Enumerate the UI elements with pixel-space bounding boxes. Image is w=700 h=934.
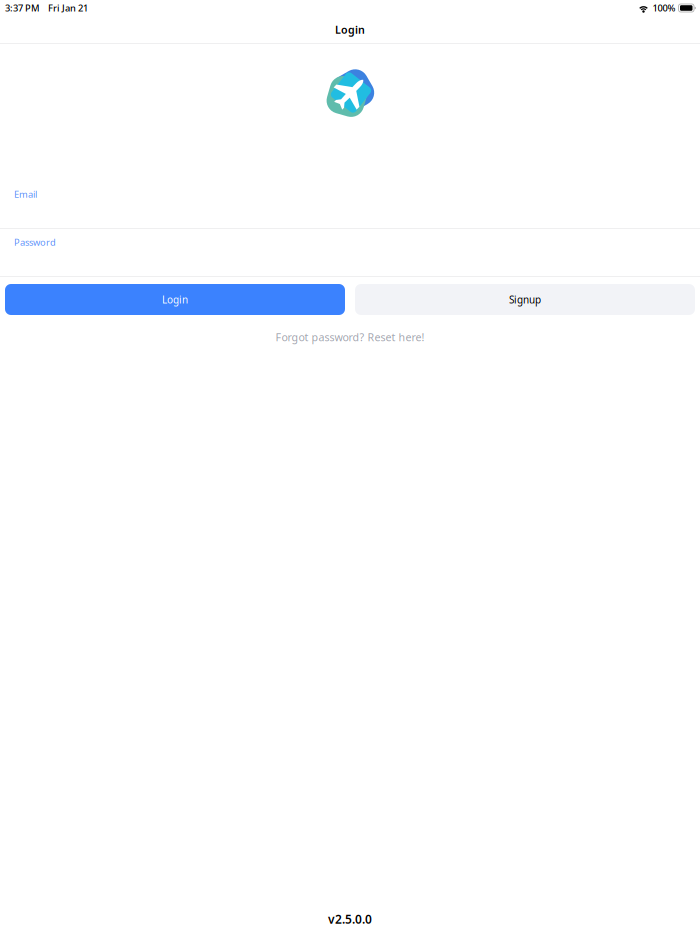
staticText: Signup bbox=[509, 293, 541, 306]
button[interactable]: Password bbox=[0, 229, 700, 277]
staticText: 100% bbox=[652, 2, 675, 14]
staticText: 3:37 PM bbox=[5, 2, 40, 14]
staticText: Login bbox=[335, 22, 365, 37]
button[interactable]: Email bbox=[0, 181, 700, 229]
button[interactable]: Signup bbox=[355, 284, 695, 315]
staticText: Email bbox=[14, 188, 37, 200]
staticText: Password bbox=[14, 236, 56, 248]
staticText: v2.5.0.0 bbox=[328, 911, 372, 927]
staticText: Fri Jan 21 bbox=[48, 2, 88, 14]
button[interactable]: Forgot password? Reset here! bbox=[265, 315, 434, 350]
button[interactable]: Login bbox=[5, 284, 345, 315]
staticText: Forgot password? Reset here! bbox=[275, 330, 424, 344]
staticText: Login bbox=[162, 293, 188, 306]
